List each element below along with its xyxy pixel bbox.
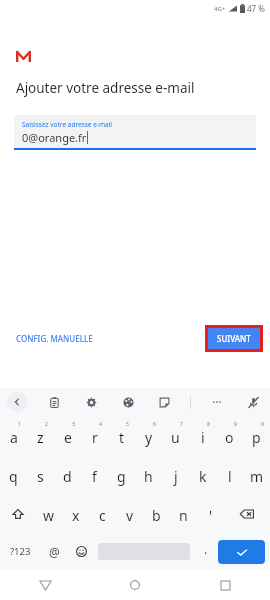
button[interactable]: w bbox=[35, 494, 62, 533]
staticText: 0 bbox=[261, 421, 264, 428]
staticText: g bbox=[117, 467, 126, 486]
staticText: Ajouter votre adresse e-mail bbox=[16, 79, 195, 97]
staticText: j bbox=[174, 467, 178, 486]
staticText: r bbox=[92, 428, 98, 447]
button[interactable]: Back bbox=[0, 570, 90, 600]
button[interactable]: Shift bbox=[0, 494, 35, 533]
button[interactable]: 5 bbox=[108, 416, 135, 455]
button[interactable]: 4 bbox=[81, 416, 108, 455]
button[interactable]: 8 bbox=[189, 416, 216, 455]
button[interactable]: Saisissez votre adresse e-mail bbox=[14, 115, 256, 150]
button[interactable]: 7 bbox=[162, 416, 189, 455]
button[interactable]: Settings bbox=[81, 392, 101, 412]
button[interactable]: l bbox=[216, 455, 243, 494]
staticText: f bbox=[92, 467, 97, 486]
button[interactable]: 3 bbox=[54, 416, 81, 455]
staticText: 4 bbox=[99, 421, 102, 428]
button[interactable]: Voice input muted bbox=[243, 392, 263, 412]
button[interactable]: ?123 bbox=[0, 533, 41, 570]
button[interactable]: g bbox=[108, 455, 135, 494]
button[interactable]: m bbox=[243, 455, 270, 494]
button[interactable]: SUIVANT bbox=[208, 328, 260, 349]
button[interactable]: ' bbox=[197, 494, 224, 533]
staticText: k bbox=[199, 467, 207, 486]
button[interactable]: . bbox=[193, 533, 218, 570]
staticText: a bbox=[10, 428, 18, 447]
staticText: m bbox=[250, 467, 264, 486]
button[interactable]: h bbox=[135, 455, 162, 494]
staticText: b bbox=[152, 506, 161, 525]
button[interactable]: Emoji bbox=[68, 533, 95, 570]
staticText: 8 bbox=[207, 421, 210, 428]
staticText: x bbox=[72, 506, 80, 525]
staticText: @ bbox=[49, 544, 60, 560]
button[interactable]: 2 bbox=[27, 416, 54, 455]
staticText: d bbox=[63, 467, 72, 486]
staticText: e bbox=[64, 428, 72, 447]
staticText: t bbox=[119, 428, 125, 447]
staticText: v bbox=[126, 506, 134, 525]
staticText: CONFIG. MANUELLE bbox=[16, 333, 93, 344]
staticText: z bbox=[37, 428, 44, 447]
button[interactable]: 6 bbox=[135, 416, 162, 455]
button[interactable]: Home bbox=[90, 570, 180, 600]
staticText: 2 bbox=[45, 421, 48, 428]
button[interactable]: Stickers bbox=[154, 392, 174, 412]
button[interactable]: j bbox=[162, 455, 189, 494]
button[interactable]: v bbox=[116, 494, 143, 533]
button[interactable]: Backspace bbox=[224, 494, 270, 533]
staticText: u bbox=[171, 428, 180, 447]
button[interactable]: c bbox=[89, 494, 116, 533]
button[interactable]: k bbox=[189, 455, 216, 494]
staticText: 9 bbox=[234, 421, 237, 428]
button[interactable]: Themes bbox=[118, 392, 138, 412]
staticText: 0@orange.fr bbox=[22, 130, 87, 145]
staticText: 47 % bbox=[247, 3, 265, 14]
staticText: o bbox=[225, 428, 234, 447]
button[interactable]: Back bbox=[7, 392, 27, 412]
button[interactable]: d bbox=[54, 455, 81, 494]
staticText: ?123 bbox=[10, 545, 31, 558]
staticText: i bbox=[201, 428, 205, 447]
button[interactable]: CONFIG. MANUELLE bbox=[0, 329, 101, 348]
staticText: 6 bbox=[153, 421, 156, 428]
staticText: Saisissez votre adresse e-mail bbox=[22, 120, 113, 129]
staticText: SUIVANT bbox=[217, 333, 251, 344]
button[interactable]: 1 bbox=[0, 416, 27, 455]
staticText: y bbox=[145, 428, 153, 447]
staticText: 7 bbox=[180, 421, 183, 428]
button[interactable]: n bbox=[170, 494, 197, 533]
button[interactable]: Enter bbox=[218, 540, 265, 564]
button[interactable]: @ bbox=[41, 533, 68, 570]
button[interactable]: Recent apps bbox=[180, 570, 270, 600]
button[interactable]: b bbox=[143, 494, 170, 533]
staticText: w bbox=[43, 506, 55, 525]
staticText: n bbox=[179, 506, 188, 525]
staticText: 5 bbox=[126, 421, 129, 428]
button[interactable]: 0 bbox=[243, 416, 270, 455]
button[interactable]: More options bbox=[207, 392, 227, 412]
staticText: . bbox=[204, 541, 208, 557]
staticText: ' bbox=[209, 506, 213, 525]
staticText: h bbox=[144, 467, 153, 486]
button[interactable]: x bbox=[62, 494, 89, 533]
staticText: l bbox=[228, 467, 232, 486]
button[interactable]: s bbox=[27, 455, 54, 494]
staticText: s bbox=[37, 467, 44, 486]
button[interactable]: Clipboard bbox=[44, 392, 64, 412]
staticText: c bbox=[99, 506, 106, 525]
button[interactable]: q bbox=[0, 455, 27, 494]
button[interactable]: f bbox=[81, 455, 108, 494]
staticText: 1 bbox=[18, 421, 21, 428]
staticText: 3 bbox=[72, 421, 75, 428]
staticText: 4G+ bbox=[214, 5, 226, 13]
button[interactable]: 9 bbox=[216, 416, 243, 455]
staticText: p bbox=[252, 428, 261, 447]
staticText: q bbox=[9, 467, 18, 486]
